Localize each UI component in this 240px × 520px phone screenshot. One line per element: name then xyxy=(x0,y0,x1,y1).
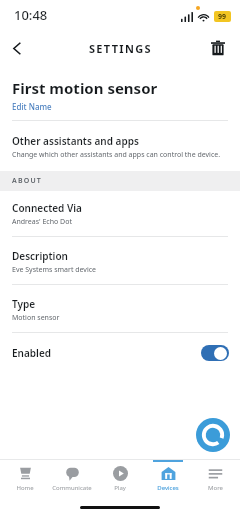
button[interactable]: Description xyxy=(0,249,240,275)
staticText: Type xyxy=(12,297,36,311)
staticText: Home xyxy=(16,484,34,492)
staticText: Connected Via xyxy=(12,201,82,215)
button[interactable]: Edit Name xyxy=(12,101,52,112)
staticText: Enabled xyxy=(12,346,52,360)
staticText: Motion sensor xyxy=(12,313,60,323)
staticText: Devices xyxy=(157,484,179,492)
staticText: Eve Systems smart device xyxy=(12,265,97,275)
staticText: Edit Name xyxy=(12,101,52,112)
button[interactable]: Devices xyxy=(145,460,191,502)
staticText: Other assistants and apps xyxy=(12,134,139,148)
staticText: Andreas' Echo Dot xyxy=(12,217,72,227)
button[interactable]: Play xyxy=(97,460,143,502)
staticText: ABOUT xyxy=(12,176,43,186)
staticText: First motion sensor xyxy=(12,78,158,98)
staticText: Change which other assistants and apps c… xyxy=(12,150,221,160)
staticText: Description xyxy=(12,249,68,263)
staticText: Play xyxy=(114,484,126,492)
button[interactable]: Home xyxy=(2,460,48,502)
button[interactable]: Back xyxy=(0,31,34,65)
button[interactable]: Delete xyxy=(202,32,234,64)
button[interactable]: Alexa xyxy=(196,418,230,452)
button[interactable]: Connected Via xyxy=(0,201,240,227)
staticText: SETTINGS xyxy=(89,41,152,56)
staticText: 10:48 xyxy=(14,6,48,24)
button[interactable]: Type xyxy=(0,297,240,323)
button[interactable]: Other assistants and apps xyxy=(0,134,240,160)
staticText: Communicate xyxy=(52,484,92,492)
button[interactable]: Communicate xyxy=(49,460,95,502)
staticText: More xyxy=(208,484,223,492)
button[interactable]: Enabled xyxy=(0,333,240,373)
button[interactable]: More xyxy=(192,460,238,502)
staticText: 99 xyxy=(218,12,227,22)
